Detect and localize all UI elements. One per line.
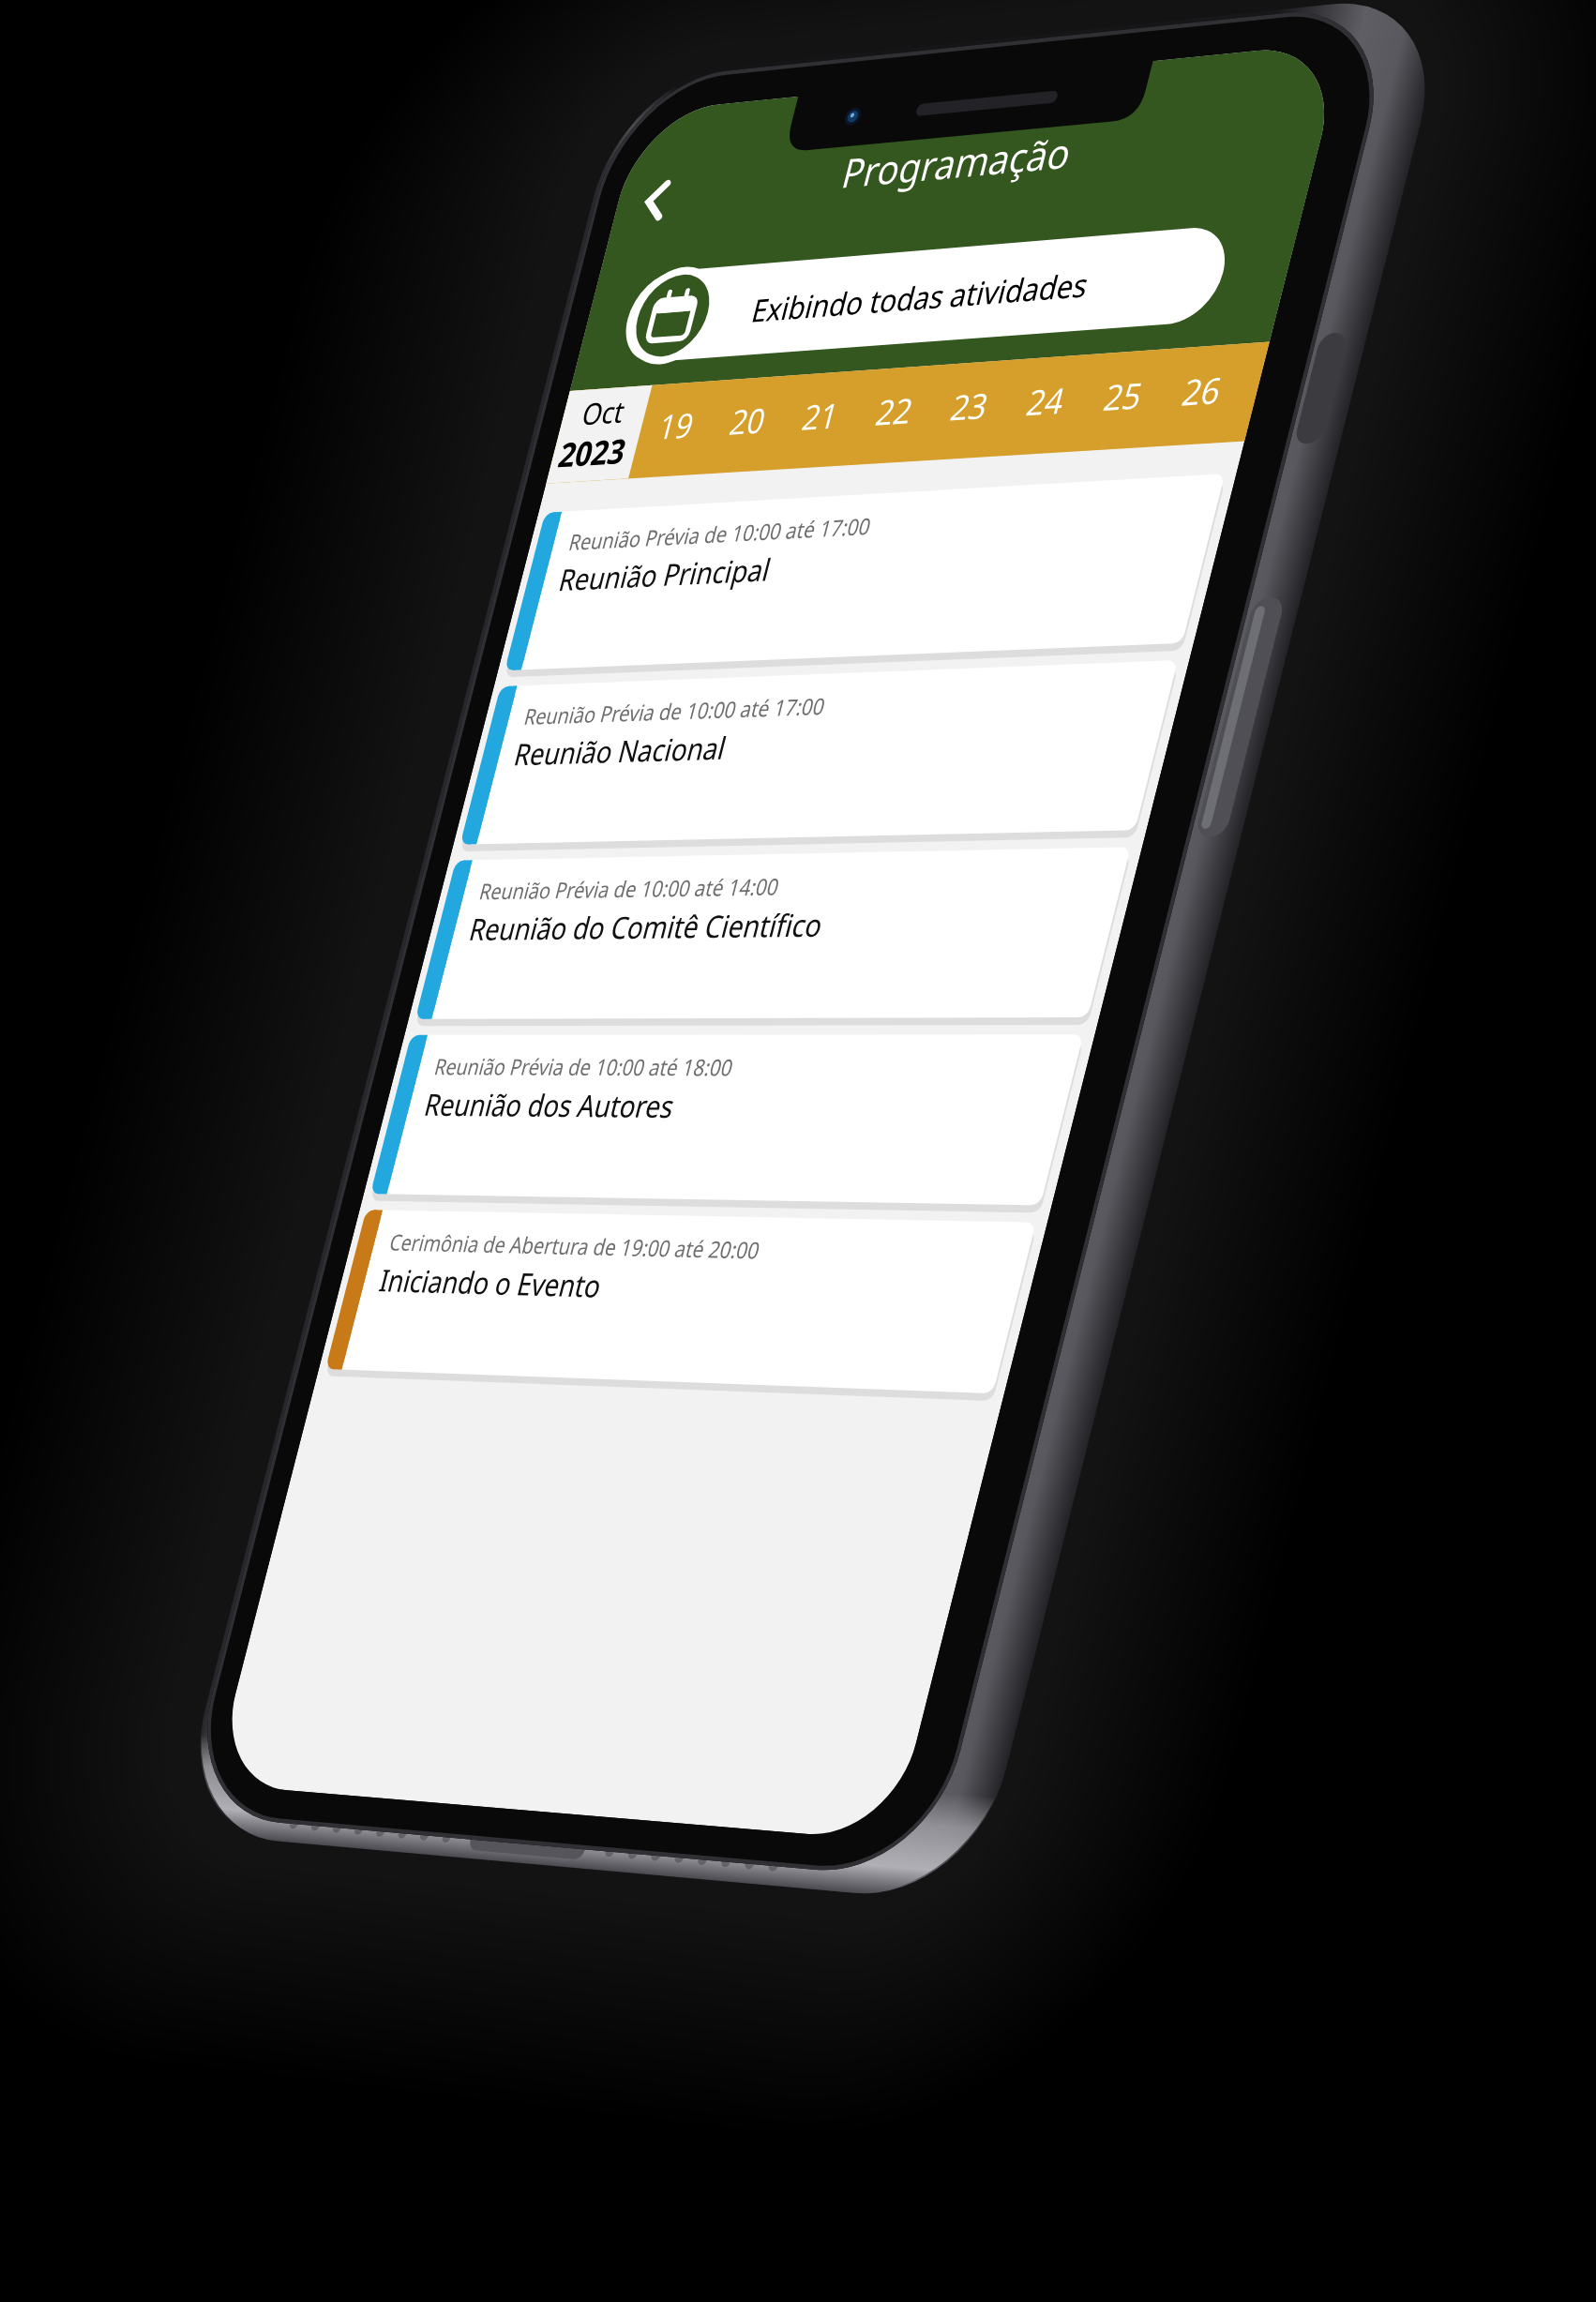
button[interactable] <box>0 0 1596 2302</box>
